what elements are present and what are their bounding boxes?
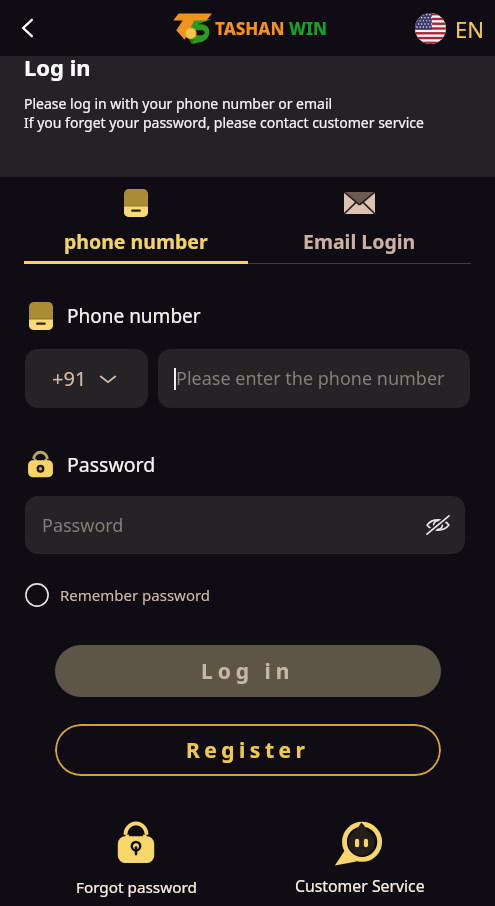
button[interactable]: Remember password (25, 583, 219, 607)
button[interactable]: phone number (24, 182, 248, 260)
button[interactable]: Log in (55, 645, 441, 697)
staticText: TASHAN (215, 17, 285, 40)
staticText: Customer Service (295, 875, 425, 897)
staticText: Please log in with your phone number or … (24, 94, 333, 113)
staticText: WIN (289, 17, 328, 40)
button[interactable]: EN (415, 13, 484, 44)
button[interactable]: Please enter the phone number (158, 349, 470, 408)
staticText: Log in (201, 657, 295, 686)
staticText: Password (42, 513, 422, 538)
button[interactable]: Show password (422, 509, 454, 541)
button[interactable]: Register (55, 724, 441, 776)
button[interactable]: Forgot password (56, 821, 216, 898)
staticText: Forgot password (76, 877, 197, 898)
staticText: phone number (64, 228, 208, 255)
staticText: Remember password (60, 585, 211, 605)
staticText: +91 (52, 365, 87, 392)
button[interactable]: +91 (25, 349, 148, 408)
staticText: EN (455, 14, 484, 44)
button[interactable]: Customer Service (280, 820, 440, 897)
staticText: Register (186, 736, 310, 765)
staticText: Password (67, 451, 156, 478)
button[interactable]: Back (8, 8, 48, 48)
staticText: Phone number (67, 303, 201, 329)
button[interactable]: Email Login (248, 182, 471, 260)
staticText: Email Login (303, 228, 416, 255)
staticText: Please enter the phone number (176, 366, 445, 391)
button[interactable]: Password (25, 496, 465, 554)
staticText: If you forget your password, please cont… (24, 113, 424, 132)
staticText: Log in (24, 52, 91, 82)
